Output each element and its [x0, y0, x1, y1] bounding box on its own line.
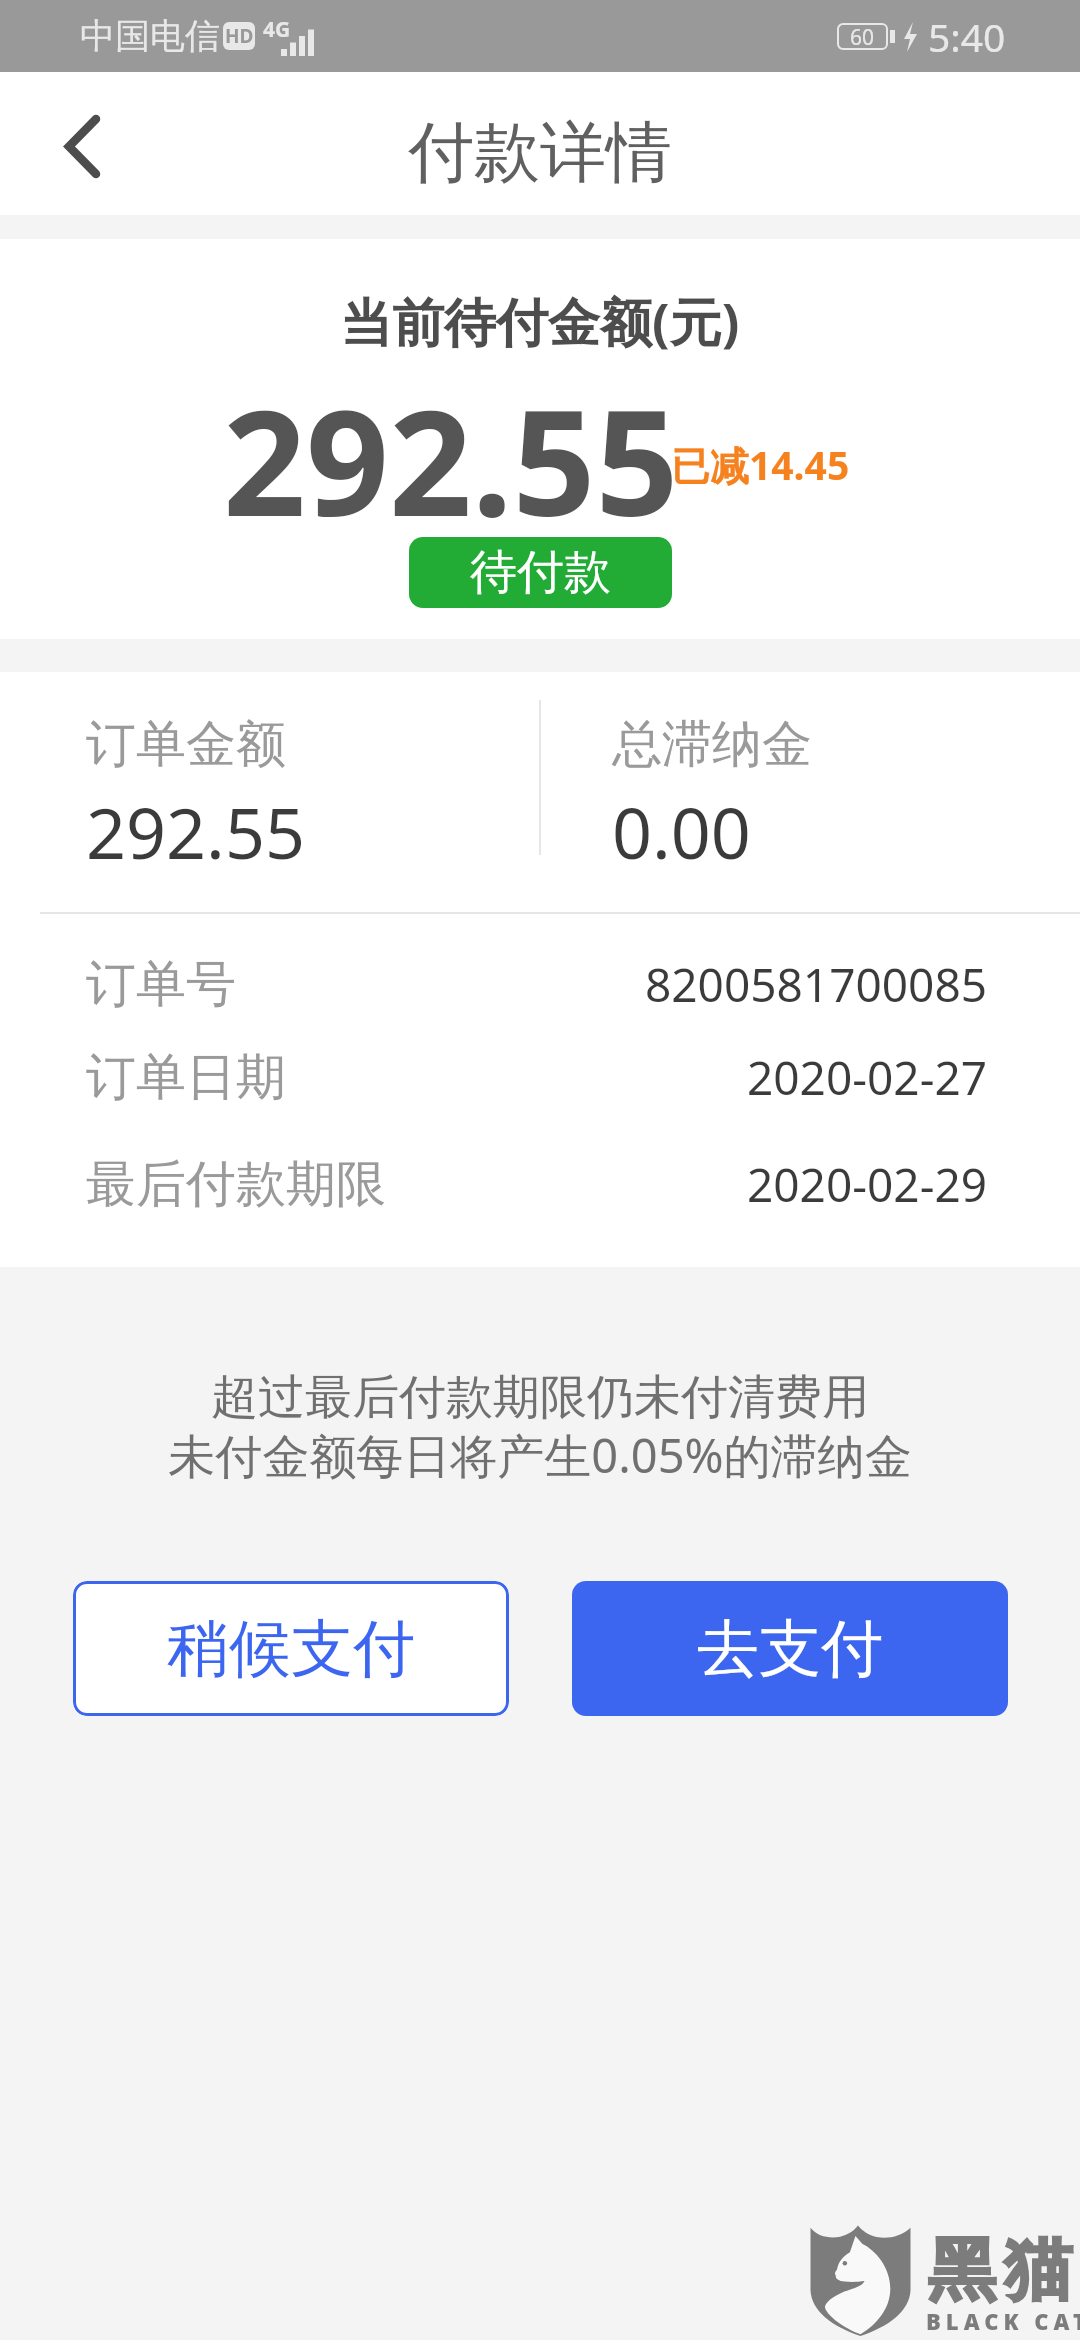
staticText: 最后付款期限	[86, 1153, 386, 1216]
staticText: 2020-02-29	[747, 1153, 988, 1216]
staticText: 中国电信	[80, 14, 220, 58]
staticText: 订单号	[86, 953, 236, 1016]
staticText: 5:40	[928, 10, 1006, 63]
button[interactable]: 去支付	[572, 1581, 1008, 1716]
staticText: HD	[225, 23, 254, 49]
staticText: 已减14.45	[671, 438, 850, 491]
staticText: 未付金额每日将产生0.05%的滞纳金	[168, 1423, 912, 1487]
staticText: 待付款	[470, 543, 611, 602]
staticText: 2020-02-27	[747, 1046, 988, 1109]
staticText: 8200581700085	[645, 953, 988, 1016]
button[interactable]: 待付款	[409, 537, 672, 608]
staticText: 0.00	[612, 784, 751, 879]
staticText: 4G	[263, 15, 291, 44]
staticText: 付款详情	[408, 111, 672, 194]
staticText: 去支付	[697, 1610, 883, 1688]
staticText: 订单日期	[86, 1046, 286, 1109]
staticText: BLACK CAT	[926, 2306, 1080, 2336]
button[interactable]: 最后付款期限	[0, 1125, 1080, 1244]
staticText: 超过最后付款期限仍未付清费用	[211, 1368, 869, 1427]
staticText: 订单金额	[86, 713, 286, 776]
staticText: 稍候支付	[167, 1610, 415, 1688]
staticText: 黑猫	[924, 2228, 1076, 2314]
staticText: 总滞纳金	[612, 713, 812, 776]
staticText: 当前待付金额(元)	[340, 285, 740, 356]
button[interactable]: 订单日期	[0, 1030, 1080, 1125]
staticText: 292.55	[86, 784, 305, 879]
button[interactable]: 订单号	[0, 938, 1080, 1030]
staticText: 60	[850, 23, 875, 50]
button[interactable]: 稍候支付	[73, 1581, 509, 1716]
staticText: 292.55	[223, 361, 679, 558]
button[interactable]: Back	[34, 96, 130, 192]
